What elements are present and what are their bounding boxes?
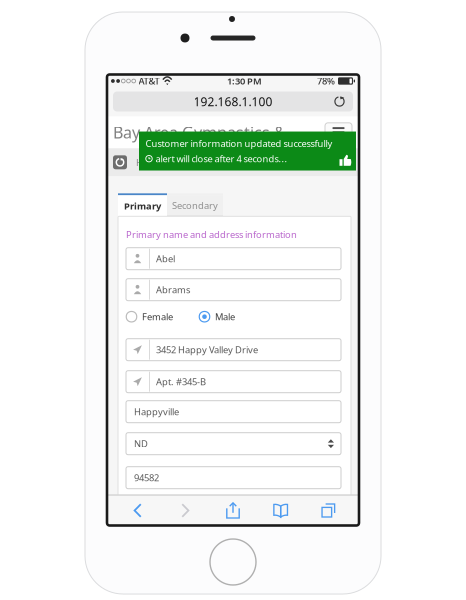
- button[interactable]: Forward: [168, 495, 202, 525]
- button[interactable]: Apt. #345-B: [118, 371, 341, 393]
- staticText: 3452 Happy Valley Drive: [156, 343, 258, 356]
- button[interactable]: Refresh: [113, 155, 127, 169]
- staticText: Female: [142, 310, 173, 323]
- staticText: Bay Area Gymnastics &: [113, 122, 286, 143]
- staticText: Secondary: [172, 199, 218, 211]
- button[interactable]: 94582: [118, 467, 341, 489]
- staticText: ND: [134, 437, 148, 450]
- button[interactable]: Male: [199, 310, 235, 323]
- button[interactable]: Female: [126, 310, 173, 323]
- button[interactable]: Home: [127, 156, 163, 168]
- staticText: Primary: [124, 200, 161, 212]
- button[interactable]: Tabs: [311, 495, 345, 525]
- button[interactable]: Share: [216, 495, 250, 525]
- staticText: Primary name and address information: [126, 228, 297, 241]
- staticText: Apt. #345-B: [156, 375, 206, 388]
- button[interactable]: Primary: [118, 193, 167, 216]
- button[interactable]: Bookmarks: [264, 495, 298, 525]
- button[interactable]: Abrams: [118, 279, 341, 301]
- button[interactable]: Menu: [325, 123, 352, 142]
- staticText: Abrams: [156, 283, 190, 296]
- button[interactable]: Abel: [118, 248, 341, 270]
- staticText: 78%: [317, 75, 335, 87]
- button[interactable]: Secondary: [167, 193, 223, 216]
- staticText: 1:30 PM: [227, 75, 262, 87]
- staticText: Abel: [156, 252, 175, 265]
- button[interactable]: Happyville: [118, 401, 341, 423]
- button[interactable]: Back: [121, 495, 155, 525]
- button[interactable]: 3452 Happy Valley Drive: [118, 339, 341, 361]
- staticText: Male: [215, 310, 235, 323]
- staticText: Happyville: [134, 405, 179, 418]
- staticText: 192.168.1.100: [193, 93, 272, 109]
- staticText: Home: [136, 156, 163, 168]
- staticText: Customer information updated successfull…: [145, 137, 332, 149]
- button[interactable]: ND: [118, 433, 341, 455]
- staticText: 94582: [134, 471, 159, 484]
- button[interactable]: 192.168.1.100: [113, 91, 353, 111]
- staticText: AT&T: [139, 75, 160, 87]
- staticText: alert will close after 4 seconds...: [155, 152, 287, 165]
